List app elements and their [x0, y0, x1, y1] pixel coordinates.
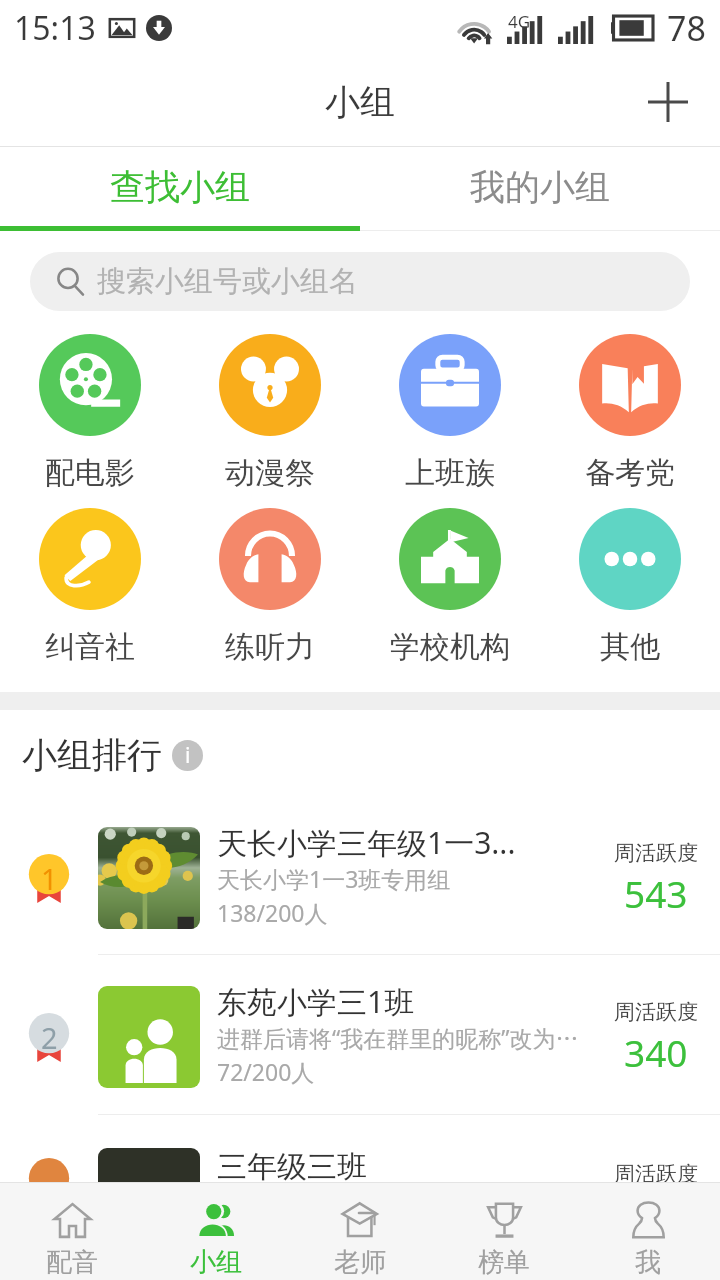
button[interactable]: 其他	[540, 508, 720, 666]
staticText: 上班族	[405, 454, 495, 492]
staticText: 138/200人	[217, 897, 328, 928]
staticText: 4G	[508, 10, 531, 33]
staticText: 纠音社	[45, 628, 135, 666]
staticText: 东苑小学三1班	[217, 981, 415, 1022]
staticText: 小组	[190, 1246, 242, 1279]
button[interactable]: 2	[0, 955, 720, 1115]
staticText: 榜单	[478, 1246, 530, 1279]
staticText: 天长小学三年级1一3...	[217, 822, 516, 863]
button[interactable]: 搜索小组号或小组名	[30, 252, 690, 311]
button[interactable]: 配电影	[0, 334, 180, 492]
button[interactable]: 三年级三班	[0, 1115, 720, 1280]
button[interactable]: 老师	[288, 1182, 432, 1280]
staticText: 2	[41, 1018, 58, 1057]
button[interactable]: 我的小组	[360, 147, 720, 231]
staticText: 配电影	[45, 454, 135, 492]
staticText: 78	[667, 5, 706, 51]
staticText: 周活跃度	[614, 840, 698, 866]
button[interactable]: 上班族	[360, 334, 540, 492]
staticText: 动漫祭	[225, 454, 315, 492]
button[interactable]: 练听力	[180, 508, 360, 666]
button[interactable]: 查找小组	[0, 147, 360, 231]
staticText: 三年级三班	[217, 1148, 367, 1186]
staticText: 我	[635, 1246, 661, 1279]
staticText: 我的小组	[470, 165, 610, 209]
staticText: 340	[624, 1027, 688, 1077]
staticText: 543	[624, 868, 688, 918]
staticText: 配音	[46, 1246, 98, 1279]
staticText: 周活跃度	[614, 1161, 698, 1187]
staticText: 其他	[600, 628, 660, 666]
staticText: 周活跃度	[614, 999, 698, 1025]
button[interactable]: 学校机构	[360, 508, 540, 666]
button[interactable]: 配音	[0, 1182, 144, 1280]
button[interactable]: 榜单	[432, 1182, 576, 1280]
staticText: 搜索小组号或小组名	[97, 263, 358, 300]
button[interactable]: Info	[172, 740, 203, 771]
staticText: 备考党	[585, 454, 675, 492]
button[interactable]: 备考党	[540, 334, 720, 492]
staticText: 学校机构	[390, 628, 510, 666]
button[interactable]: 1	[0, 810, 720, 955]
staticText: 小组排行	[22, 733, 162, 777]
button[interactable]: 小组	[144, 1182, 288, 1280]
staticText: 老师	[334, 1246, 386, 1279]
button[interactable]: 我	[576, 1182, 720, 1280]
staticText: 进群后请将“我在群里的昵称”改为孩子姓..	[217, 1022, 590, 1053]
staticText: 练听力	[225, 628, 315, 666]
staticText: 天长小学1一3班专用组	[217, 863, 451, 894]
staticText: 15:13	[14, 6, 96, 50]
staticText: 1	[41, 859, 58, 898]
staticText: 查找小组	[110, 165, 250, 209]
staticText: 72/200人	[217, 1056, 315, 1087]
button[interactable]: 动漫祭	[180, 334, 360, 492]
button[interactable]: 纠音社	[0, 508, 180, 666]
staticText: 小组	[325, 80, 395, 124]
button[interactable]: Create group	[638, 72, 698, 132]
staticText: i	[185, 741, 191, 770]
